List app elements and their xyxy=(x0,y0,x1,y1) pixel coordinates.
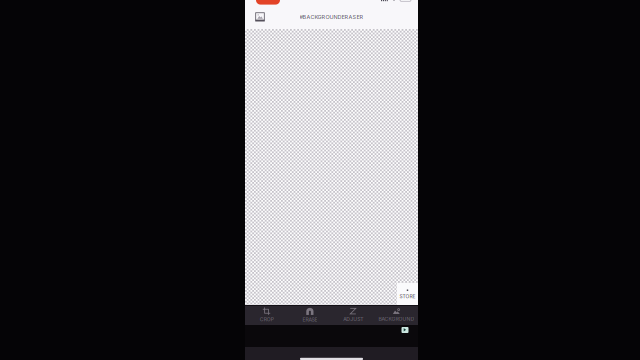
button[interactable]: BACKGROUND xyxy=(375,305,418,325)
staticText: ADJUST xyxy=(343,316,363,322)
button[interactable]: ADJUST xyxy=(331,305,375,325)
staticText: CROP xyxy=(260,316,274,322)
staticText: #BACKGROUNDERASER xyxy=(299,14,363,20)
staticText: BACKGROUND xyxy=(378,316,414,322)
staticText: STORE xyxy=(399,293,415,299)
button[interactable]: Photo library xyxy=(250,7,270,27)
button[interactable]: CROP xyxy=(245,305,288,325)
staticText: ERASE xyxy=(302,316,317,323)
button[interactable]: ERASE xyxy=(288,305,331,325)
button[interactable]: STORE xyxy=(397,283,418,305)
button[interactable]: Picture in picture xyxy=(400,325,410,335)
